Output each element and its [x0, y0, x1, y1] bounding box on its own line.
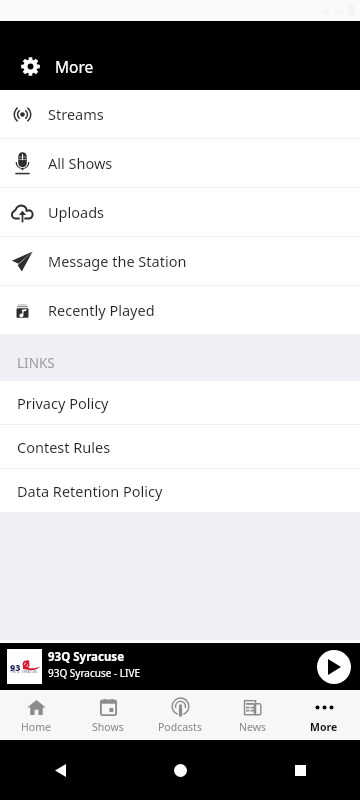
button[interactable]: Data Retention Policy [0, 469, 360, 512]
button[interactable]: Play [317, 650, 351, 684]
button[interactable]: Home [0, 690, 72, 740]
button[interactable]: Message the Station [0, 237, 360, 286]
button[interactable]: News [216, 690, 288, 740]
button[interactable]: Back [0, 740, 120, 800]
button[interactable]: More [288, 690, 360, 740]
button[interactable]: Recents [240, 740, 360, 800]
staticText: More [55, 56, 94, 77]
button[interactable]: Settings [16, 52, 44, 80]
staticText: 93Q Syracuse - LIVE [48, 666, 140, 680]
staticText: More [310, 720, 338, 734]
button[interactable]: Home [120, 740, 240, 800]
button[interactable]: Shows [72, 690, 144, 740]
staticText: News [239, 720, 266, 734]
staticText: 93 [10, 661, 21, 673]
button[interactable]: Uploads [0, 188, 360, 237]
staticText: Data Retention Policy [17, 481, 163, 501]
staticText: Contest Rules [17, 437, 111, 457]
staticText: Podcasts [158, 720, 202, 734]
staticText: Uploads [48, 202, 105, 222]
staticText: Streams [48, 104, 104, 124]
staticText: 93Q Syracuse [48, 649, 124, 665]
staticText: Home [21, 720, 51, 734]
button[interactable]: Podcasts [144, 690, 216, 740]
button[interactable]: Privacy Policy [0, 381, 360, 425]
staticText: THE Q - SYRACUSE [10, 670, 38, 674]
button[interactable]: Streams [0, 90, 360, 139]
staticText: Privacy Policy [17, 393, 109, 413]
button[interactable]: All Shows [0, 139, 360, 188]
button[interactable]: Recently Played [0, 286, 360, 334]
staticText: Message the Station [48, 251, 187, 271]
staticText: All Shows [48, 153, 113, 173]
staticText: Shows [92, 720, 124, 734]
staticText: Recently Played [48, 300, 155, 320]
staticText: LINKS [17, 354, 55, 372]
button[interactable]: Contest Rules [0, 425, 360, 469]
